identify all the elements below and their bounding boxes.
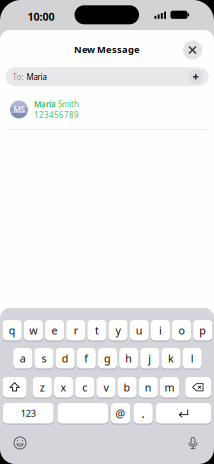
staticText: l	[191, 351, 194, 365]
staticText: @	[116, 406, 126, 420]
staticText: v	[103, 380, 108, 394]
button[interactable]: MS	[0, 94, 214, 124]
button[interactable]: j	[140, 348, 159, 368]
staticText: o	[179, 323, 185, 337]
staticText: t	[95, 323, 99, 337]
button[interactable]: To:	[5, 67, 208, 86]
staticText: Maria	[34, 99, 56, 109]
button[interactable]: g	[98, 348, 117, 368]
staticText: q	[9, 323, 16, 337]
button[interactable]: z	[33, 377, 52, 397]
button[interactable]: .	[133, 403, 153, 423]
staticText: a	[20, 351, 26, 365]
button[interactable]: x	[54, 377, 73, 397]
button[interactable]: u	[130, 320, 149, 340]
button[interactable]: r	[66, 320, 85, 340]
staticText: MS	[13, 104, 24, 115]
staticText: Maria	[26, 71, 46, 82]
staticText: s	[41, 351, 46, 365]
staticText: 123456789	[34, 109, 79, 120]
button[interactable]: w	[24, 320, 43, 340]
button[interactable]: v	[96, 377, 115, 397]
staticText: j	[148, 351, 151, 365]
staticText: b	[124, 380, 131, 394]
button[interactable]	[185, 377, 211, 397]
button[interactable]: m	[160, 377, 179, 397]
button[interactable]: c	[75, 377, 94, 397]
button[interactable]	[156, 403, 211, 423]
staticText: i	[159, 323, 162, 337]
staticText: m	[164, 380, 174, 394]
staticText: z	[40, 380, 45, 394]
button[interactable]: t	[87, 320, 106, 340]
staticText: e	[51, 323, 57, 337]
staticText: 123	[21, 407, 36, 419]
staticText: u	[136, 323, 143, 337]
button[interactable]: d	[56, 348, 75, 368]
staticText: c	[82, 380, 87, 394]
staticText: w	[29, 323, 37, 337]
staticText: To:	[12, 71, 23, 82]
button[interactable]: l	[183, 348, 202, 368]
button[interactable]	[186, 437, 199, 449]
button[interactable]	[188, 69, 203, 84]
staticText: Smith	[58, 99, 79, 109]
button[interactable]: s	[34, 348, 53, 368]
button[interactable]: e	[45, 320, 64, 340]
staticText: p	[199, 323, 206, 337]
button[interactable]: f	[77, 348, 96, 368]
button[interactable]: q	[3, 320, 22, 340]
staticText: f	[84, 351, 88, 365]
staticText: r	[74, 323, 78, 337]
button[interactable]: a	[13, 348, 32, 368]
button[interactable]	[57, 403, 108, 423]
staticText: n	[145, 380, 152, 394]
staticText: g	[104, 351, 111, 365]
button[interactable]: p	[193, 320, 212, 340]
button[interactable]: @	[111, 403, 130, 423]
button[interactable]	[13, 436, 26, 449]
button[interactable]: b	[118, 377, 137, 397]
staticText: y	[116, 323, 121, 337]
staticText: New Message	[74, 43, 140, 56]
staticText: k	[168, 351, 174, 365]
button[interactable]: k	[161, 348, 180, 368]
staticText: h	[125, 351, 132, 365]
button[interactable]: n	[139, 377, 158, 397]
staticText: .	[142, 405, 145, 421]
button[interactable]: 123	[3, 403, 53, 423]
staticText: d	[62, 351, 69, 365]
button[interactable]	[3, 377, 26, 397]
button[interactable]: o	[172, 320, 191, 340]
staticText: 10:00	[27, 9, 54, 24]
button[interactable]: h	[119, 348, 138, 368]
button[interactable]: i	[151, 320, 170, 340]
staticText: x	[60, 380, 66, 394]
button[interactable]: y	[109, 320, 128, 340]
button[interactable]	[183, 40, 202, 59]
